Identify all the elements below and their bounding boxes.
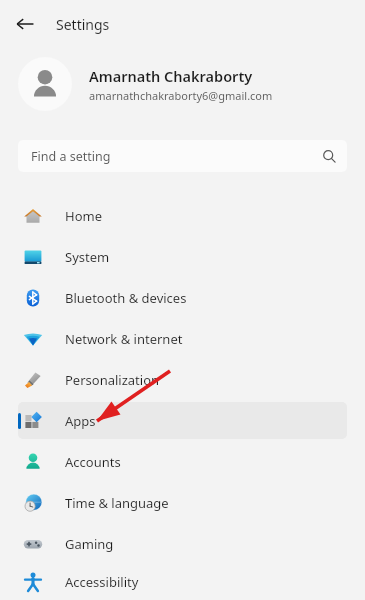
staticText: Accessibility	[65, 573, 139, 591]
staticText: Accounts	[65, 453, 121, 471]
staticText: Apps	[65, 412, 96, 430]
staticText: Home	[65, 207, 102, 225]
button[interactable]: Gaming	[18, 525, 347, 562]
button[interactable]: Network & internet	[18, 320, 347, 357]
button[interactable]: Bluetooth & devices	[18, 279, 347, 316]
button[interactable]: System	[18, 238, 347, 275]
staticText: Network & internet	[65, 330, 183, 348]
button[interactable]: Personalization	[18, 361, 347, 398]
staticText: Personalization	[65, 371, 160, 389]
staticText: System	[65, 248, 110, 266]
staticText: Bluetooth & devices	[65, 289, 187, 307]
button[interactable]: Accounts	[18, 443, 347, 480]
staticText: Settings	[56, 15, 110, 34]
staticText: amarnathchakraborty6@gmail.com	[89, 88, 273, 103]
staticText: Find a setting	[31, 148, 314, 165]
button[interactable]: Accessibility	[18, 564, 347, 600]
button[interactable]: Apps	[18, 402, 347, 439]
button[interactable]: Find a setting	[18, 140, 347, 172]
staticText: Amarnath Chakraborty	[89, 66, 253, 86]
staticText: Gaming	[65, 535, 114, 553]
button[interactable]: Home	[18, 197, 347, 234]
button[interactable]: Amarnath Chakraborty	[0, 48, 365, 120]
button[interactable]: Time & language	[18, 484, 347, 521]
staticText: Time & language	[65, 494, 169, 512]
button[interactable]: Back	[8, 7, 42, 41]
